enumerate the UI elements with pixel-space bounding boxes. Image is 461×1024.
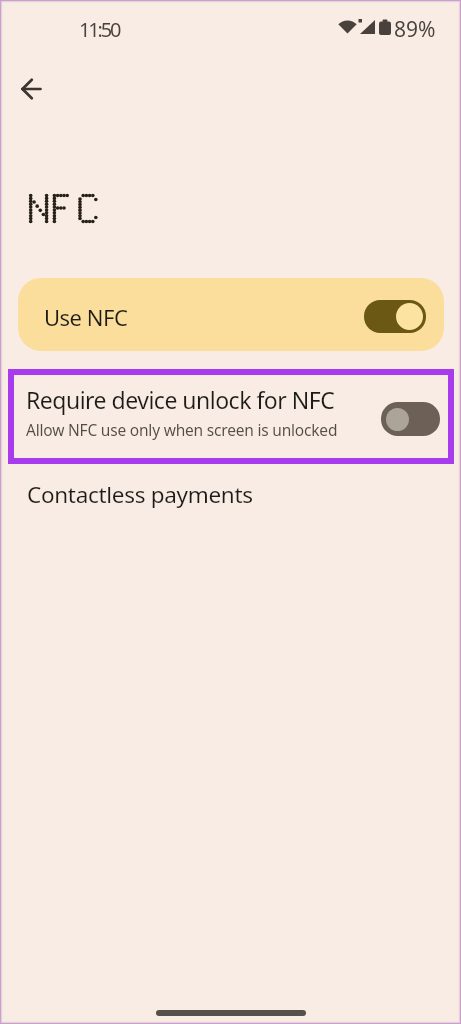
button[interactable]	[18, 278, 444, 351]
staticText: Require device unlock for NFC	[26, 384, 335, 415]
button[interactable]	[364, 300, 426, 333]
staticText: 89%	[394, 15, 436, 44]
button[interactable]	[9, 66, 55, 112]
button[interactable]: Contactless payments	[0, 470, 461, 526]
staticText: 11:50	[79, 16, 120, 43]
button[interactable]: Require device unlock for NFC	[8, 369, 454, 464]
staticText: Use NFC	[44, 302, 128, 332]
staticText: Contactless payments	[27, 479, 253, 510]
button[interactable]	[381, 402, 440, 436]
staticText: Allow NFC use only when screen is unlock…	[26, 419, 338, 440]
